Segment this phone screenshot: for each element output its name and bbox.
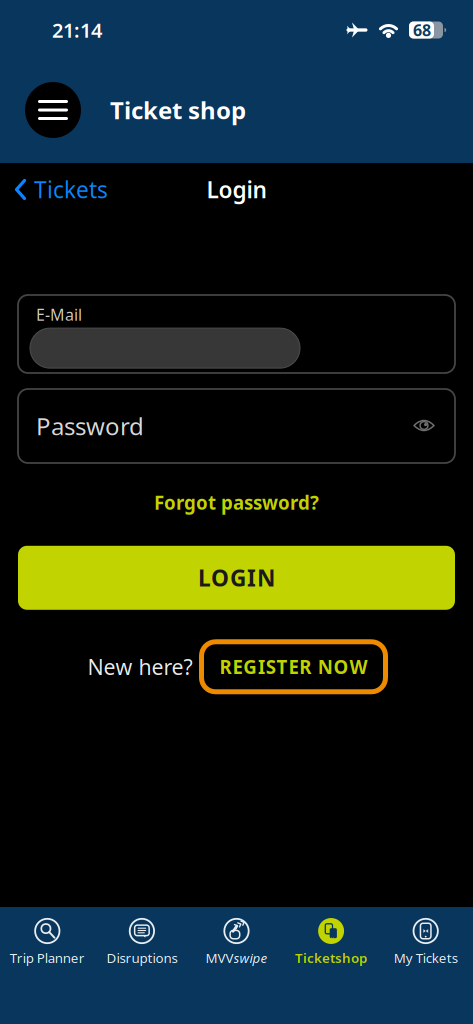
button[interactable]: Back to Tickets: [0, 174, 108, 204]
button[interactable]: E-Mail: [18, 295, 455, 373]
button[interactable]: Ticketshop: [284, 907, 378, 1024]
staticText: MVV: [205, 949, 233, 967]
staticText: Password: [36, 410, 144, 442]
staticText: Trip Planner: [10, 949, 85, 967]
staticText: LOGIN: [198, 563, 275, 593]
button[interactable]: My Tickets: [378, 907, 473, 1024]
button[interactable]: REGISTER NOW: [201, 642, 385, 692]
staticText: 21:14: [52, 17, 102, 43]
staticText: Forgot password?: [154, 490, 319, 515]
staticText: New here?: [87, 653, 192, 681]
button[interactable]: Show password: [413, 419, 455, 433]
button[interactable]: Disruptions: [95, 907, 189, 1024]
button[interactable]: Password: [18, 389, 455, 463]
staticText: swipe: [233, 949, 267, 967]
staticText: Ticket shop: [110, 94, 246, 126]
button[interactable]: Forgot password?: [154, 490, 319, 515]
staticText: My Tickets: [394, 949, 458, 967]
staticText: 68: [413, 19, 431, 41]
staticText: Tickets: [34, 174, 108, 204]
button[interactable]: LOGIN: [18, 546, 455, 610]
staticText: Ticketshop: [295, 949, 367, 967]
staticText: Login: [206, 174, 266, 204]
button[interactable]: Trip Planner: [0, 907, 95, 1024]
staticText: REGISTER NOW: [220, 654, 367, 679]
button[interactable]: MVVswipe: [189, 907, 284, 1024]
staticText: E-Mail: [36, 304, 82, 325]
button[interactable]: Menu: [25, 82, 81, 138]
staticText: Disruptions: [106, 949, 177, 967]
